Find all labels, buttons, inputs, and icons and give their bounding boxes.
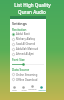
button[interactable]: Ahmed Al Ajmi xyxy=(10,52,46,57)
staticText: Bookmark xyxy=(28,88,37,92)
button[interactable]: Saad Al Ghamdi xyxy=(10,42,46,47)
button[interactable]: Online Streaming xyxy=(10,72,46,77)
button[interactable]: Settings xyxy=(37,85,46,92)
staticText: Mishary Alafasy xyxy=(16,37,36,41)
staticText: Quran Audio xyxy=(18,9,46,15)
staticText: Font Size xyxy=(12,58,25,62)
staticText: Ahmed Al Ajmi xyxy=(16,52,34,56)
staticText: Saad Al Ghamdi xyxy=(16,42,36,46)
staticText: Read xyxy=(12,89,17,92)
staticText: Settings xyxy=(38,89,46,92)
staticText: Offline Download xyxy=(16,78,38,82)
button[interactable]: Offline Download xyxy=(10,77,46,82)
staticText: Audio xyxy=(21,89,27,92)
staticText: List High Quality xyxy=(14,2,51,8)
staticText: Abdullah Matroud xyxy=(16,47,39,51)
button[interactable]: Audio xyxy=(19,85,28,92)
staticText: Data Source xyxy=(12,68,30,72)
button[interactable]: Bookmark xyxy=(28,85,37,92)
button[interactable]: Mishary Alafasy xyxy=(10,37,46,42)
button[interactable]: Abdullah Matroud xyxy=(10,47,46,52)
button[interactable]: Abdul Basit xyxy=(10,32,46,37)
staticText: Settings xyxy=(12,21,27,26)
staticText: Online Streaming xyxy=(16,73,38,77)
staticText: Recitation xyxy=(12,28,27,32)
staticText: Abdul Basit xyxy=(16,32,30,36)
button[interactable]: Read xyxy=(10,85,19,92)
